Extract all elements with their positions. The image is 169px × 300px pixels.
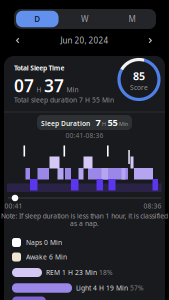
- staticText: Score: [130, 83, 148, 92]
- staticText: 57%: [130, 284, 144, 292]
- staticText: as a nap.: [70, 219, 99, 228]
- staticText: H: [102, 120, 106, 128]
- button[interactable]: W: [61, 9, 108, 29]
- staticText: 55: [107, 116, 117, 129]
- staticText: D: [34, 14, 40, 24]
- staticText: W: [81, 14, 89, 24]
- button[interactable]: D: [14, 9, 61, 29]
- staticText: Total Sleep Time: [14, 64, 64, 72]
- staticText: 18%: [99, 268, 113, 277]
- staticText: H: [36, 85, 41, 94]
- button[interactable]: Previous day: [12, 35, 23, 46]
- staticText: Awake 6 Min: [26, 253, 67, 261]
- staticText: Sleep Duration: [41, 119, 90, 128]
- button[interactable]: Next day: [144, 35, 155, 46]
- staticText: Note: If sleep duration is less than 1 h…: [1, 212, 168, 220]
- staticText: 00:41: [4, 202, 22, 210]
- staticText: Total sleep duration 7 H 55 Min: [14, 96, 114, 104]
- staticText: Light 4 H 19 Min: [76, 284, 128, 292]
- staticText: Jun 20, 2024: [60, 35, 108, 46]
- staticText: M: [128, 14, 135, 24]
- staticText: 07: [14, 74, 34, 97]
- staticText: 7: [91, 116, 100, 129]
- staticText: Min: [66, 85, 78, 94]
- button[interactable]: Time scrubber: [12, 195, 18, 201]
- staticText: 08:36: [143, 202, 161, 210]
- staticText: Naps 0 Min: [26, 238, 62, 247]
- staticText: 37: [44, 74, 64, 97]
- staticText: REM 1 H 23 Min: [46, 268, 97, 277]
- staticText: Min: [119, 120, 128, 128]
- button[interactable]: M: [108, 9, 155, 29]
- staticText: 85: [133, 69, 145, 83]
- staticText: 00:41-08:36: [65, 131, 103, 140]
